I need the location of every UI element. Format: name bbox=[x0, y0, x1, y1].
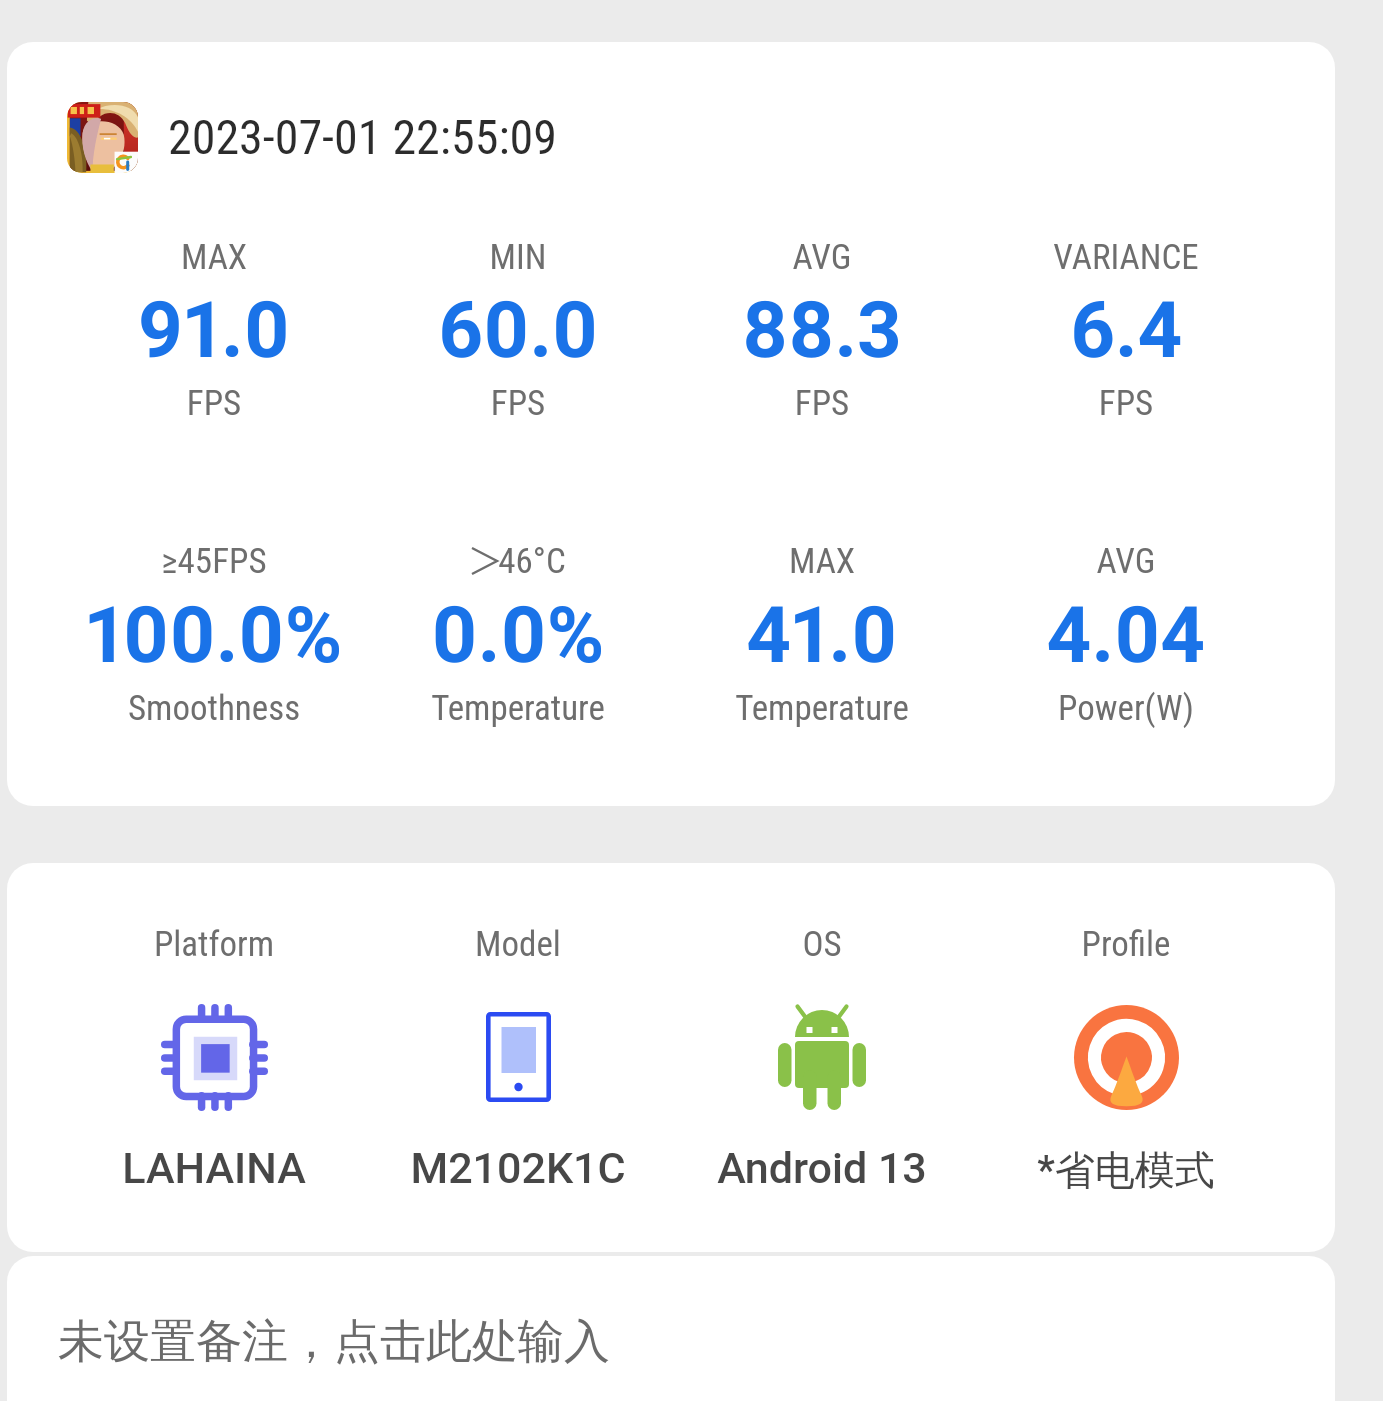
staticText: 未设置备注，点击此处输入 bbox=[58, 1313, 610, 1371]
staticText: 46°C bbox=[498, 541, 566, 582]
staticText: Android 13 bbox=[670, 1143, 974, 1193]
staticText: ≥45FPS bbox=[62, 541, 366, 582]
staticText: MAX bbox=[670, 541, 974, 582]
button[interactable]: Platform bbox=[7, 863, 1335, 1252]
staticText: LAHAINA bbox=[62, 1143, 366, 1193]
staticText: AVG bbox=[670, 237, 974, 278]
staticText: 6.4 bbox=[974, 285, 1278, 376]
staticText: 41.0 bbox=[670, 590, 974, 681]
other: OS bbox=[767, 1002, 877, 1112]
button[interactable] bbox=[62, 903, 366, 1203]
staticText: *省电模式 bbox=[974, 1145, 1278, 1195]
staticText: Power(W) bbox=[974, 688, 1278, 729]
staticText: MIN bbox=[366, 237, 670, 278]
other: Profile bbox=[1071, 1002, 1181, 1112]
staticText: M2102K1C bbox=[366, 1143, 670, 1193]
staticText: FPS bbox=[670, 383, 974, 424]
staticText: 91.0 bbox=[62, 285, 366, 376]
staticText: 88.3 bbox=[670, 285, 974, 376]
staticText: FPS bbox=[974, 383, 1278, 424]
staticText: Model bbox=[366, 924, 670, 965]
staticText: AVG bbox=[974, 541, 1278, 582]
staticText: 0.0% bbox=[366, 590, 670, 681]
staticText: Temperature bbox=[670, 688, 974, 729]
button[interactable] bbox=[366, 903, 670, 1203]
staticText: 2023-07-01 22:55:09 bbox=[168, 109, 557, 165]
staticText: Platform bbox=[62, 924, 366, 965]
staticText: FPS bbox=[366, 383, 670, 424]
staticText: VARIANCE bbox=[974, 237, 1278, 278]
staticText: Profile bbox=[974, 924, 1278, 965]
button[interactable]: 未设置备注，点击此处输入 bbox=[7, 1256, 1335, 1401]
staticText: Temperature bbox=[366, 688, 670, 729]
button[interactable] bbox=[974, 903, 1278, 1203]
staticText: MAX bbox=[62, 237, 366, 278]
other: App icon bbox=[67, 102, 138, 173]
staticText: 4.04 bbox=[974, 590, 1278, 681]
staticText: 60.0 bbox=[366, 285, 670, 376]
staticText: 100.0% bbox=[62, 590, 366, 681]
other: Model bbox=[463, 1002, 573, 1112]
button[interactable]: App icon bbox=[7, 42, 1335, 806]
button[interactable] bbox=[670, 903, 974, 1203]
button[interactable]: App icon bbox=[55, 92, 557, 182]
other: Platform bbox=[159, 1002, 269, 1112]
staticText: FPS bbox=[62, 383, 366, 424]
staticText: Smoothness bbox=[62, 688, 366, 729]
staticText: OS bbox=[670, 924, 974, 965]
